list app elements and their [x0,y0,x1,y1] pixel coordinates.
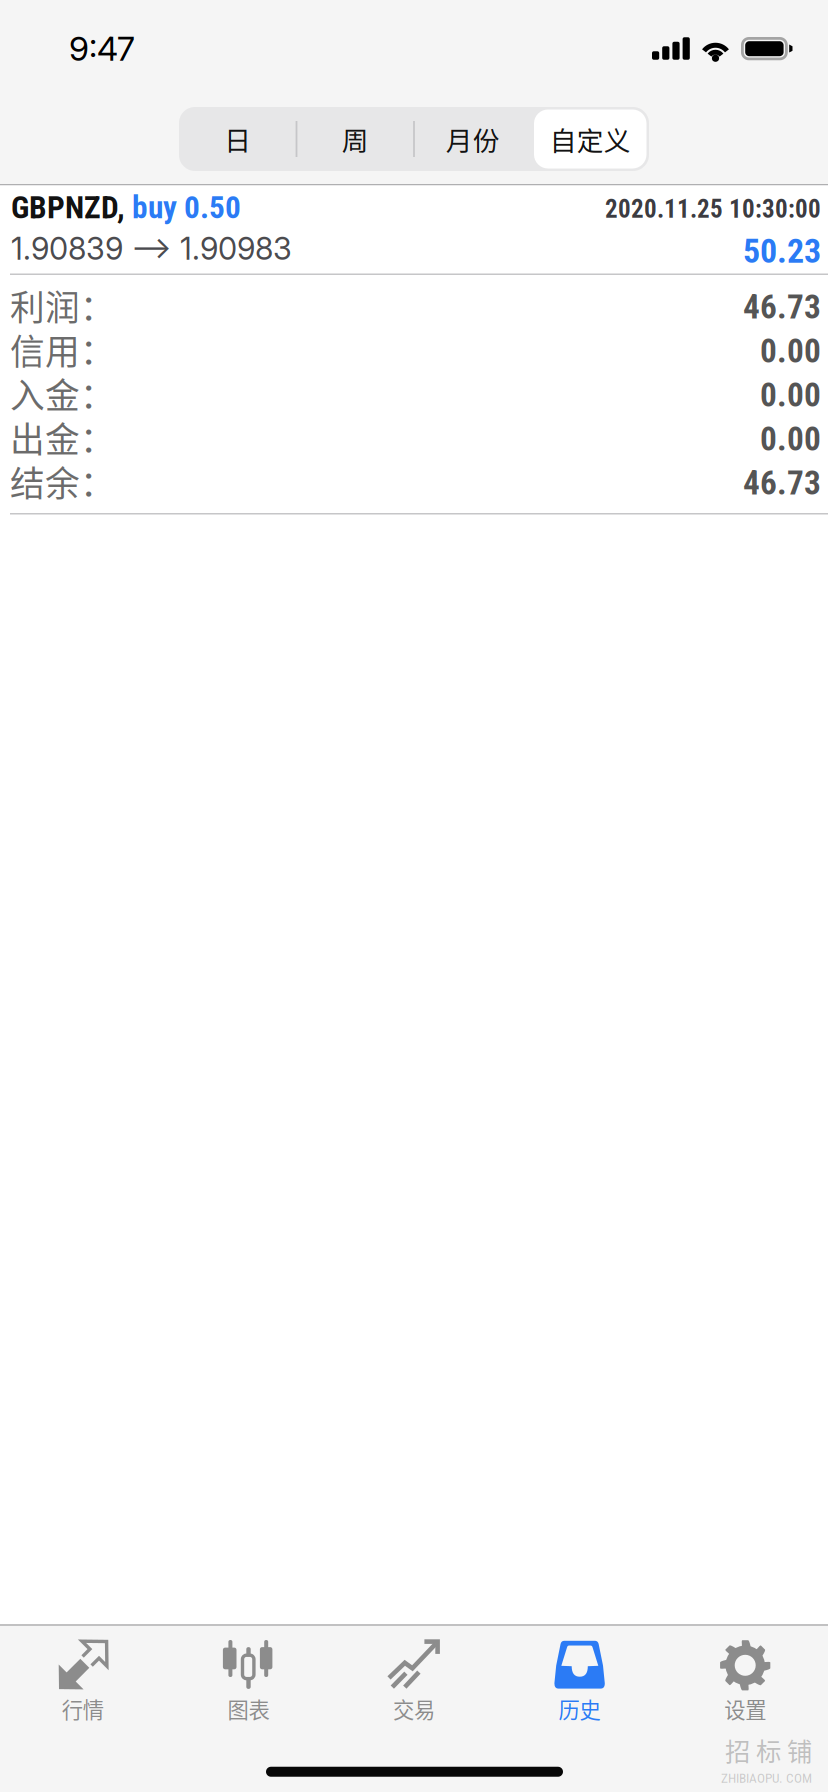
staticText: 2020.11.25 10:30:00 [605,194,821,224]
staticText: 招 标 铺 [725,1732,812,1768]
button[interactable]: 自定义 [531,107,649,171]
button[interactable]: 周 [296,107,414,171]
staticText: 出金： [10,412,115,463]
staticText: 月份 [446,120,500,158]
button[interactable]: GBPNZD, [0,185,828,273]
staticText: ZHIBIAOPU. COM [721,1770,812,1786]
staticText: 设置 [724,1693,766,1724]
staticText: 46.73 [743,463,821,503]
button[interactable]: 设置 [662,1626,828,1726]
staticText: 0.00 [760,375,821,415]
staticText: 交易 [393,1693,435,1724]
staticText: 50.23 [743,231,821,271]
staticText: 历史 [559,1693,601,1724]
staticText: 利润： [10,280,115,331]
button[interactable]: 图表 [166,1626,331,1726]
staticText: 周 [342,120,369,158]
staticText: 行情 [62,1693,104,1724]
button[interactable]: 交易 [331,1626,497,1726]
staticText: GBPNZD, [11,189,132,226]
staticText: 0.00 [760,331,821,371]
staticText: 46.73 [743,287,821,327]
staticText: 图表 [227,1693,269,1724]
staticText: 1.90839 ⟶ 1.90983 [11,230,292,267]
staticText: 日 [224,120,251,158]
staticText: 结余： [10,456,115,507]
staticText: 入金： [10,368,115,419]
staticText: buy 0.50 [132,189,241,226]
staticText: 自定义 [550,120,631,158]
button[interactable]: 行情 [0,1626,166,1726]
staticText: 信用： [10,324,115,375]
staticText: 9:47 [69,28,135,69]
button[interactable]: 日 [179,107,296,171]
button[interactable]: 月份 [414,107,531,171]
staticText: 0.00 [760,419,821,459]
button[interactable]: 历史 [497,1626,662,1726]
